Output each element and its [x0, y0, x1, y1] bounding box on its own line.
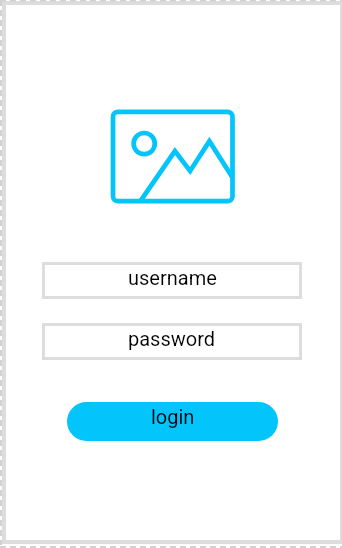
- button[interactable]: username: [45, 265, 299, 296]
- staticText: password: [128, 327, 216, 350]
- button[interactable]: login: [67, 402, 278, 441]
- staticText: username: [128, 266, 217, 289]
- button[interactable]: password: [45, 326, 299, 357]
- other: App logo: [110, 109, 236, 204]
- staticText: login: [151, 405, 195, 428]
